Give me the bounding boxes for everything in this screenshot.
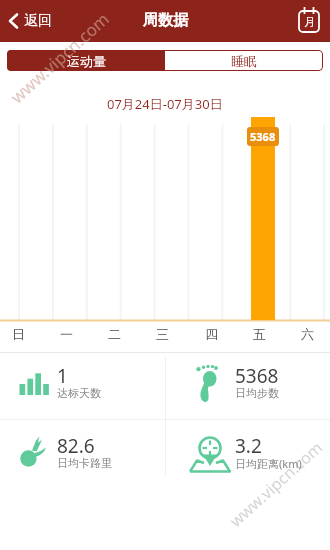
staticText: 四 xyxy=(205,326,218,342)
staticText: 5368 xyxy=(235,363,279,389)
staticText: 日均距离(km) xyxy=(235,456,302,471)
staticText: 三 xyxy=(156,326,169,342)
staticText: 睡眠 xyxy=(231,53,257,69)
staticText: 82.6 xyxy=(57,433,95,459)
staticText: www.vipcn.com xyxy=(225,436,327,532)
staticText: 日均卡路里 xyxy=(57,456,112,470)
staticText: 六 xyxy=(301,326,314,342)
staticText: www.vipcn.com xyxy=(5,7,114,108)
staticText: 运动量 xyxy=(67,53,106,69)
staticText: 二 xyxy=(108,326,121,342)
button[interactable]: 返回 xyxy=(9,12,52,30)
staticText: 返回 xyxy=(24,12,52,30)
staticText: 达标天数 xyxy=(57,386,101,400)
staticText: 5368 xyxy=(250,129,276,144)
staticText: 五 xyxy=(253,326,266,342)
staticText: 日 xyxy=(12,326,25,342)
button[interactable]: 睡眠 xyxy=(165,50,323,71)
staticText: 日均步数 xyxy=(235,386,279,400)
button[interactable]: 运动量 xyxy=(7,50,165,71)
staticText: 3.2 xyxy=(235,433,262,459)
staticText: 月 xyxy=(304,15,315,29)
button[interactable]: 月 xyxy=(298,7,320,33)
staticText: 周数据 xyxy=(143,11,188,30)
staticText: 07月24日-07月30日 xyxy=(107,95,223,113)
staticText: 一 xyxy=(60,326,73,342)
staticText: 1 xyxy=(57,363,68,389)
